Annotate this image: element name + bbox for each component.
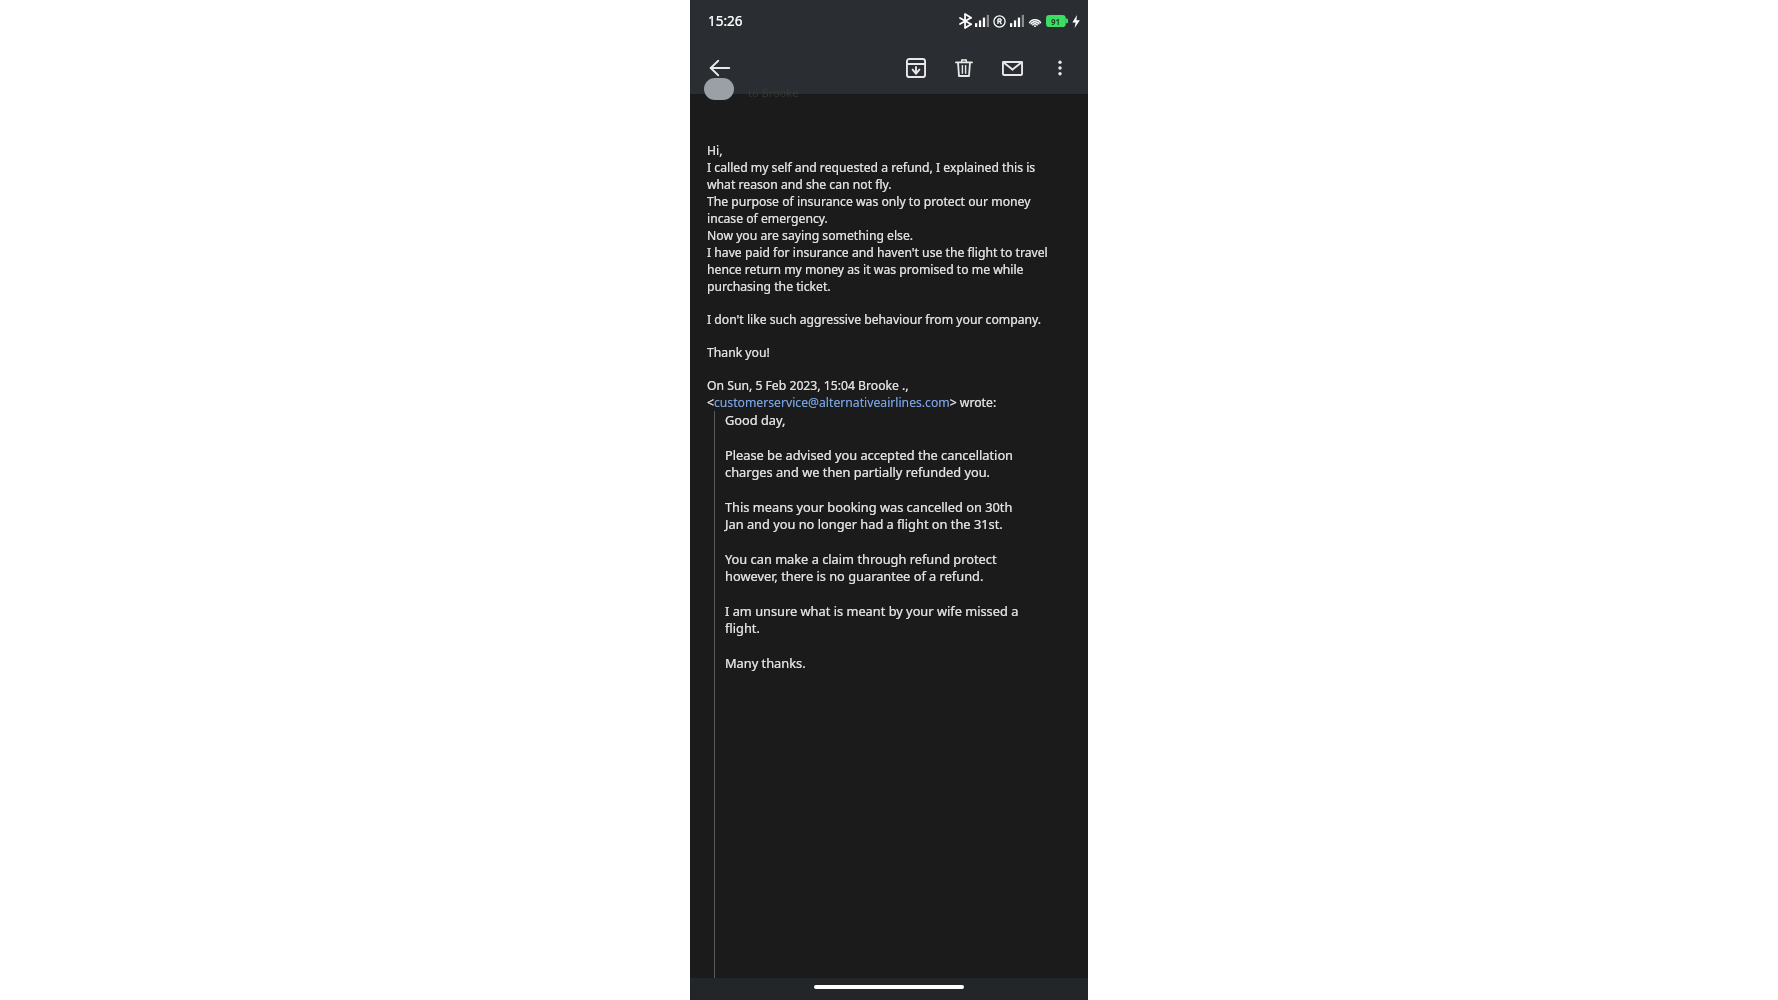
staticText: The purpose of insurance was only to pro… <box>707 193 1031 210</box>
button[interactable]: Mark unread <box>988 44 1036 92</box>
button[interactable]: Home gesture bar <box>814 985 964 989</box>
button[interactable]: Back <box>696 44 744 92</box>
staticText: This means your booking was cancelled on… <box>725 498 1013 515</box>
staticText: 91 <box>1051 16 1061 27</box>
button[interactable]: Sender avatar <box>704 78 734 100</box>
staticText: incase of emergency. <box>707 210 828 227</box>
staticText: to Brooke <box>748 85 799 100</box>
staticText: purchasing the ticket. <box>707 278 831 295</box>
staticText: charges and we then partially refunded y… <box>725 463 991 480</box>
button[interactable]: Delete <box>940 44 988 92</box>
staticText: On Sun, 5 Feb 2023, 15:04 Brooke ., <cus… <box>707 377 1074 411</box>
staticText: Now you are saying something else. <box>707 227 914 244</box>
staticText: I have paid for insurance and haven't us… <box>707 244 1048 261</box>
staticText: hence return my money as it was promised… <box>707 261 1024 278</box>
staticText: Jan and you no longer had a flight on th… <box>725 515 1003 532</box>
staticText: however, there is no guarantee of a refu… <box>725 567 984 584</box>
button[interactable]: Archive <box>892 44 940 92</box>
staticText: Good day, <box>725 411 786 428</box>
staticText: flight. <box>725 619 760 636</box>
staticText: Please be advised you accepted the cance… <box>725 446 1014 463</box>
staticText: You can make a claim through refund prot… <box>725 550 997 567</box>
staticText: I am unsure what is meant by your wife m… <box>725 602 1019 619</box>
staticText: Thank you! <box>707 344 770 361</box>
staticText: I don't like such aggressive behaviour f… <box>707 311 1042 328</box>
staticText: Many thanks. <box>725 654 806 671</box>
staticText: what reason and she can not fly. <box>707 176 892 193</box>
staticText: I called my self and requested a refund,… <box>707 159 1036 176</box>
staticText: Brooke <box>725 975 786 998</box>
staticText: 15:26 <box>708 12 743 30</box>
button[interactable]: More options <box>1036 44 1084 92</box>
staticText: Hi, <box>707 142 723 159</box>
